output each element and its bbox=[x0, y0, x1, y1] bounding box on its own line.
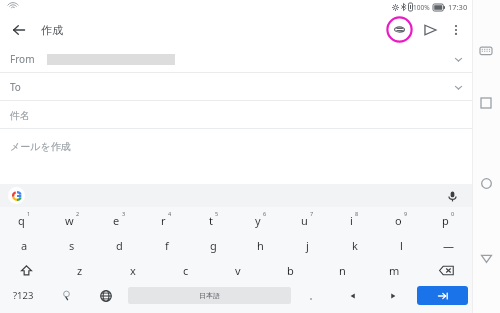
staticText: s bbox=[69, 238, 75, 253]
button[interactable]: ?123 bbox=[0, 283, 47, 308]
button[interactable]: 日本語 bbox=[128, 287, 291, 304]
button[interactable]: Next bbox=[417, 286, 468, 305]
staticText: i bbox=[350, 213, 353, 228]
staticText: k bbox=[352, 238, 358, 253]
staticText: 3 bbox=[122, 210, 126, 217]
staticText: r bbox=[161, 213, 166, 228]
staticText: e bbox=[113, 213, 120, 228]
staticText: c bbox=[183, 263, 189, 278]
button[interactable]: Cursor right bbox=[373, 283, 413, 308]
button[interactable]: Backspace bbox=[420, 258, 472, 283]
staticText: v bbox=[235, 263, 241, 278]
button[interactable]: u bbox=[284, 207, 331, 233]
button[interactable]: 件名 bbox=[0, 101, 472, 129]
staticText: 。 bbox=[309, 290, 318, 301]
staticText: From bbox=[10, 52, 35, 66]
staticText: 8 bbox=[355, 210, 359, 217]
staticText: n bbox=[339, 263, 346, 278]
staticText: メールを作成 bbox=[10, 140, 71, 153]
button[interactable]: Back bbox=[475, 247, 497, 269]
button[interactable]: f bbox=[143, 233, 190, 258]
staticText: 6 bbox=[263, 210, 267, 217]
staticText: q bbox=[18, 213, 25, 228]
button[interactable]: q bbox=[0, 207, 48, 233]
button[interactable]: r bbox=[143, 207, 190, 233]
staticText: 4 bbox=[168, 210, 172, 217]
staticText: 日本語 bbox=[199, 291, 220, 300]
button[interactable]: g bbox=[190, 233, 237, 258]
staticText: ?123 bbox=[13, 289, 34, 302]
staticText: b bbox=[287, 263, 294, 278]
button[interactable]: To bbox=[0, 73, 472, 101]
staticText: l bbox=[400, 238, 403, 253]
button[interactable]: y bbox=[237, 207, 284, 233]
staticText: 9 bbox=[404, 210, 408, 217]
button[interactable]: p bbox=[425, 207, 472, 233]
button[interactable]: Recent apps bbox=[475, 92, 497, 114]
button[interactable]: Cursor left bbox=[333, 283, 373, 308]
button[interactable]: From bbox=[0, 45, 472, 73]
staticText: 作成 bbox=[41, 23, 63, 37]
button[interactable]: Voice input bbox=[444, 188, 460, 204]
button[interactable]: n bbox=[316, 258, 368, 283]
staticText: x bbox=[130, 263, 136, 278]
button[interactable]: x bbox=[106, 258, 159, 283]
button[interactable]: l bbox=[378, 233, 425, 258]
staticText: a bbox=[21, 238, 28, 253]
button[interactable]: Back bbox=[6, 17, 32, 43]
button[interactable]: c bbox=[159, 258, 212, 283]
staticText: — bbox=[443, 238, 454, 253]
button[interactable]: v bbox=[212, 258, 264, 283]
button[interactable]: z bbox=[53, 258, 106, 283]
staticText: j bbox=[306, 238, 309, 253]
button[interactable]: k bbox=[331, 233, 378, 258]
staticText: p bbox=[442, 213, 449, 228]
button[interactable]: b bbox=[264, 258, 316, 283]
button[interactable]: Sticker bbox=[47, 283, 86, 308]
button[interactable]: o bbox=[378, 207, 425, 233]
button[interactable]: メールを作成 bbox=[0, 129, 472, 163]
button[interactable]: j bbox=[284, 233, 331, 258]
staticText: y bbox=[255, 213, 261, 228]
button[interactable]: s bbox=[48, 233, 96, 258]
staticText: t bbox=[209, 213, 213, 228]
staticText: 5 bbox=[215, 210, 219, 217]
staticText: g bbox=[210, 238, 217, 253]
button[interactable]: More options bbox=[444, 18, 468, 42]
button[interactable]: d bbox=[96, 233, 143, 258]
staticText: 0 bbox=[451, 210, 455, 217]
button[interactable]: Home bbox=[475, 172, 497, 194]
staticText: w bbox=[65, 213, 74, 228]
button[interactable]: Hide keyboard bbox=[475, 40, 497, 62]
staticText: m bbox=[389, 263, 400, 278]
staticText: 17:30 bbox=[448, 2, 468, 12]
button[interactable]: w bbox=[48, 207, 96, 233]
button[interactable]: h bbox=[237, 233, 284, 258]
button[interactable]: 。 bbox=[293, 283, 333, 308]
button[interactable]: a bbox=[0, 233, 48, 258]
staticText: o bbox=[395, 213, 402, 228]
staticText: z bbox=[77, 263, 83, 278]
button[interactable]: Shift bbox=[0, 258, 53, 283]
button[interactable]: Attach file bbox=[386, 16, 413, 43]
staticText: f bbox=[165, 238, 169, 253]
button[interactable]: Send bbox=[418, 18, 442, 42]
staticText: 1 bbox=[27, 210, 31, 217]
button[interactable]: i bbox=[331, 207, 378, 233]
button[interactable]: Change language bbox=[86, 283, 126, 308]
staticText: 件名 bbox=[10, 109, 30, 122]
staticText: h bbox=[257, 238, 264, 253]
button[interactable]: — bbox=[425, 233, 472, 258]
staticText: d bbox=[116, 238, 123, 253]
button[interactable]: t bbox=[190, 207, 237, 233]
button[interactable]: Google search bbox=[8, 187, 25, 204]
button[interactable]: m bbox=[368, 258, 420, 283]
staticText: 2 bbox=[76, 210, 80, 217]
button[interactable]: e bbox=[96, 207, 143, 233]
staticText: 100% bbox=[413, 3, 430, 12]
staticText: 7 bbox=[310, 210, 314, 217]
staticText: To bbox=[10, 80, 21, 94]
staticText: u bbox=[301, 213, 308, 228]
